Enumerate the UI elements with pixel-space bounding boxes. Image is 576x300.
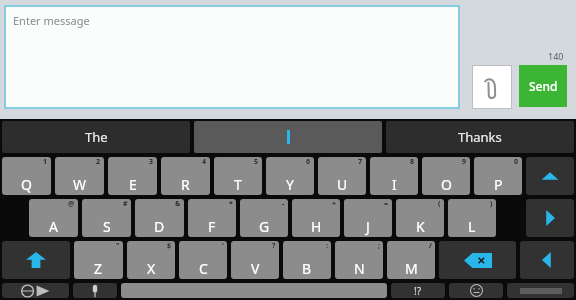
button[interactable]: : [283, 241, 331, 279]
staticText: = [384, 199, 389, 209]
staticText: W [73, 175, 87, 194]
staticText: Q [21, 175, 32, 194]
staticText: B [302, 259, 312, 278]
button[interactable]: 3 [108, 157, 157, 195]
button[interactable]: Punctuation [391, 283, 445, 298]
staticText: 140 [548, 50, 564, 62]
staticText: I [392, 175, 397, 194]
button[interactable]: + [292, 199, 340, 237]
button[interactable]: # [82, 199, 131, 237]
button[interactable]: 1 [2, 157, 51, 195]
staticText: 3 [149, 157, 154, 167]
staticText: O [441, 175, 452, 194]
button[interactable]: 0 [474, 157, 522, 195]
staticText: 5 [254, 157, 259, 167]
staticText: ? [272, 241, 276, 251]
staticText: P [494, 175, 503, 194]
button[interactable]: ( [396, 199, 444, 237]
button[interactable]: Emoji [449, 283, 503, 298]
button[interactable]: @ [29, 199, 78, 237]
button[interactable]: = [344, 199, 392, 237]
staticText: C [199, 259, 208, 278]
button[interactable]: 5 [214, 157, 262, 195]
staticText: " [116, 241, 120, 251]
staticText: Y [286, 175, 294, 194]
staticText: @ [68, 199, 75, 209]
staticText: E [129, 175, 137, 194]
staticText: G [259, 217, 270, 236]
button[interactable]: Thanks [386, 121, 574, 153]
button[interactable]: 4 [161, 157, 210, 195]
staticText: U [337, 175, 348, 194]
button[interactable]: Enter message [6, 7, 458, 107]
staticText: N [354, 259, 365, 278]
button[interactable]: Switch keyboard [2, 283, 69, 298]
staticText: L [468, 217, 476, 236]
staticText: Thanks [458, 128, 502, 146]
button[interactable]: 9 [422, 157, 470, 195]
button[interactable]: Voice input [73, 283, 117, 298]
button[interactable]: Send [519, 65, 567, 107]
button[interactable]: Move cursor right [526, 199, 574, 237]
button[interactable]: ' [179, 241, 227, 279]
button[interactable]: " [74, 241, 123, 279]
button[interactable]: The [2, 121, 190, 153]
staticText: ; [378, 241, 380, 251]
staticText: Enter message [13, 13, 90, 28]
button[interactable]: $ [127, 241, 175, 279]
staticText: 1 [43, 157, 48, 167]
staticText: * [229, 199, 233, 209]
staticText: Send [529, 78, 558, 94]
button[interactable]: Current input [194, 121, 382, 153]
staticText: K [416, 217, 425, 236]
button[interactable]: Enter [507, 283, 574, 298]
staticText: ' [222, 241, 224, 251]
staticText: - [282, 199, 285, 209]
staticText: !? [414, 284, 422, 298]
staticText: & [175, 199, 181, 209]
button[interactable]: Space [121, 283, 387, 298]
staticText: T [234, 175, 242, 194]
staticText: $ [167, 241, 172, 251]
button[interactable]: * [188, 199, 236, 237]
staticText: / [429, 241, 432, 251]
staticText: 2 [96, 157, 101, 167]
staticText: M [405, 259, 418, 278]
staticText: + [332, 199, 337, 209]
staticText: R [181, 175, 190, 194]
staticText: A [49, 217, 58, 236]
button[interactable]: & [135, 199, 184, 237]
staticText: V [251, 259, 260, 278]
staticText: Z [94, 259, 103, 278]
staticText: X [147, 259, 156, 278]
staticText: F [208, 217, 216, 236]
staticText: 4 [202, 157, 207, 167]
staticText: 7 [358, 157, 363, 167]
button[interactable]: Move cursor left [520, 241, 574, 279]
button[interactable]: 7 [318, 157, 366, 195]
button[interactable]: ) [448, 199, 496, 237]
staticText: J [366, 217, 370, 236]
staticText: D [154, 217, 165, 236]
staticText: S [103, 217, 111, 236]
staticText: # [123, 199, 128, 209]
staticText: ( [438, 199, 441, 209]
button[interactable]: ; [335, 241, 383, 279]
staticText: : [326, 241, 328, 251]
button[interactable]: ? [231, 241, 279, 279]
button[interactable]: 8 [370, 157, 418, 195]
button[interactable]: / [387, 241, 435, 279]
button[interactable]: Scroll up [526, 157, 574, 195]
staticText: The [85, 128, 108, 146]
button[interactable]: 6 [266, 157, 314, 195]
button[interactable]: Shift [2, 241, 70, 279]
button[interactable]: 2 [55, 157, 104, 195]
staticText: 8 [410, 157, 415, 167]
button[interactable]: Backspace [439, 241, 516, 279]
button[interactable]: - [240, 199, 288, 237]
staticText: 0 [514, 157, 519, 167]
staticText: H [311, 217, 322, 236]
button[interactable]: Attach [473, 66, 511, 108]
staticText: 9 [462, 157, 467, 167]
staticText: ) [490, 199, 493, 209]
